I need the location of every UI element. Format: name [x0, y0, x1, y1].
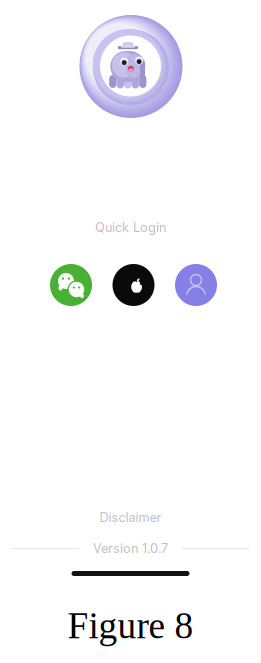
- button[interactable]: Sign in with WeChat: [50, 264, 92, 306]
- button[interactable]: Sign in with Apple: [112, 264, 154, 306]
- staticText: Quick Login: [95, 220, 166, 235]
- staticText: Version 1.0.7: [93, 541, 168, 556]
- staticText: Figure 8: [67, 605, 193, 646]
- button[interactable]: Disclaimer: [99, 511, 161, 524]
- staticText: Disclaimer: [99, 510, 161, 525]
- button[interactable]: Sign in with phone number: [175, 264, 217, 306]
